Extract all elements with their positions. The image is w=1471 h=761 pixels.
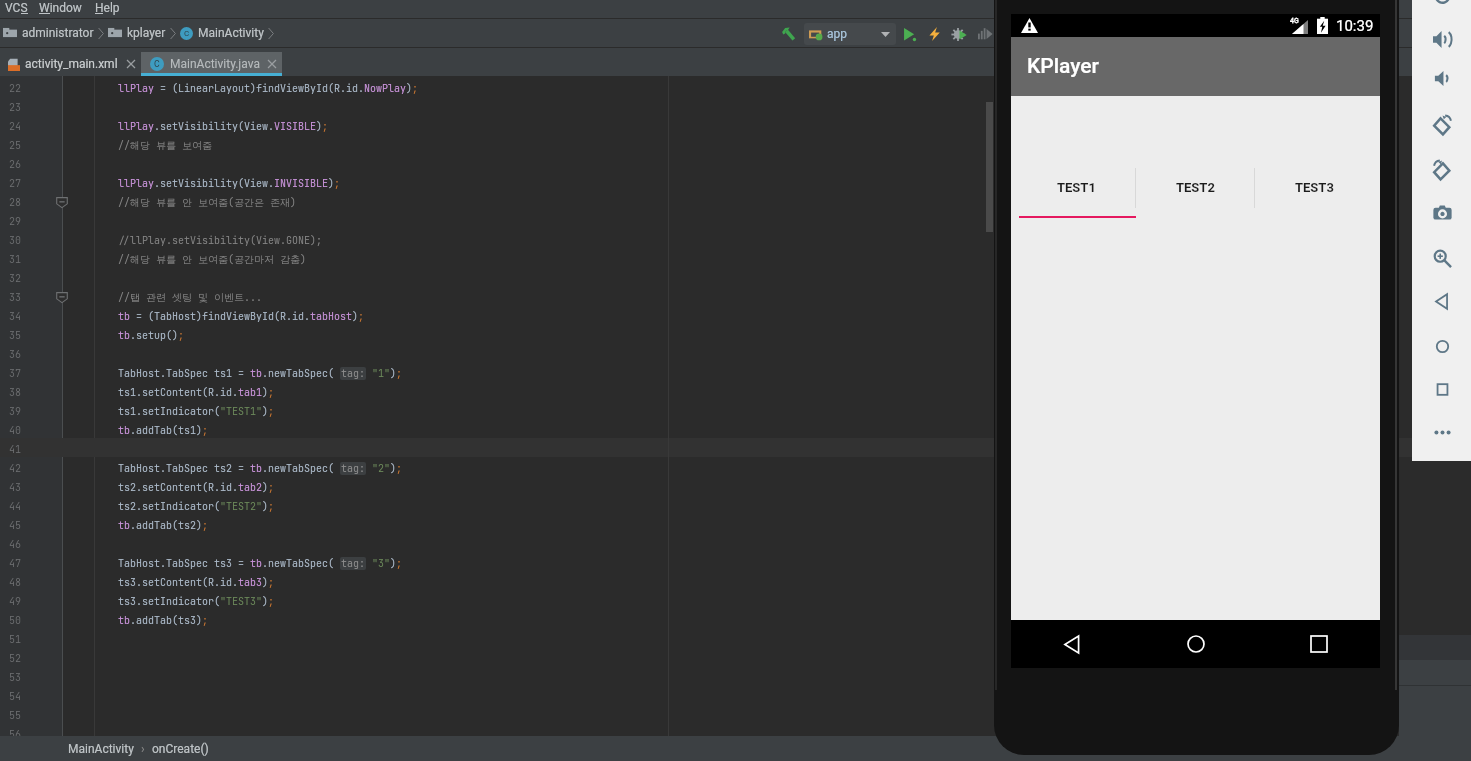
staticText: ; (268, 405, 274, 418)
button[interactable]: Volume down (1420, 56, 1464, 100)
button[interactable]: Build (778, 22, 800, 44)
button[interactable]: Apply changes (924, 24, 944, 44)
staticText: llPlay (118, 120, 154, 133)
staticText: ) (328, 177, 334, 190)
staticText: 44 (9, 500, 21, 513)
staticText: ) (406, 82, 412, 95)
staticText: activity_main.xml (25, 57, 118, 71)
staticText: tb (250, 367, 262, 380)
staticText: //해당 뷰를 보여줌 (118, 139, 212, 152)
staticText: ; (178, 329, 184, 342)
staticText: "2" (372, 462, 390, 475)
button[interactable]: Run (899, 24, 919, 44)
staticText: TabHost.TabSpec ts2 = (118, 462, 250, 475)
staticText: 51 (9, 633, 21, 646)
button[interactable]: Back (1011, 620, 1134, 668)
staticText: 47 (9, 557, 21, 570)
staticText: KPlayer (1027, 54, 1100, 79)
staticText: VCS (5, 1, 28, 15)
staticText: MainActivity.java (170, 57, 260, 71)
staticText: ) (390, 557, 396, 570)
staticText: ; (396, 367, 402, 380)
button[interactable]: Volume up (1420, 17, 1464, 61)
button[interactable]: Help (92, 0, 123, 18)
staticText: TEST3 (1295, 180, 1334, 195)
button[interactable]: VCS (2, 0, 30, 18)
staticText: ts1.setIndicator( (118, 405, 220, 418)
staticText: ; (202, 424, 208, 437)
button[interactable]: administrator (3, 26, 94, 40)
staticText: ) (316, 120, 322, 133)
staticText: 29 (9, 215, 21, 228)
staticText: tb (250, 462, 262, 475)
staticText: = (TabHost)findViewById(R.id. (130, 310, 310, 323)
staticText: tb (118, 310, 130, 323)
button[interactable]: Zoom (1420, 236, 1464, 280)
staticText: 10:39 (1336, 17, 1374, 35)
button[interactable]: app (804, 23, 896, 45)
button[interactable]: Power (1420, 0, 1464, 17)
button[interactable]: Rotate left (1420, 102, 1464, 146)
button[interactable]: Take screenshot (1420, 191, 1464, 235)
staticText: "3" (372, 557, 390, 570)
staticText: 34 (9, 310, 21, 323)
button[interactable]: C (141, 52, 282, 76)
staticText: 26 (9, 158, 21, 171)
button[interactable]: Recents (1257, 620, 1380, 668)
staticText: ; (322, 120, 328, 133)
button[interactable]: More options (1420, 410, 1464, 454)
staticText: app (827, 27, 848, 41)
staticText: Window (39, 1, 82, 15)
staticText: VISIBLE (274, 120, 316, 133)
button[interactable]: Profile (975, 24, 995, 44)
staticText: › (141, 742, 145, 756)
staticText: .newTabSpec( (262, 367, 340, 380)
staticText: .newTabSpec( (262, 462, 340, 475)
staticText: 36 (9, 348, 21, 361)
button[interactable]: Home (1134, 620, 1257, 668)
staticText: 4G (1290, 17, 1299, 25)
button[interactable]: onCreate() (152, 742, 209, 756)
button[interactable]: MainActivity (68, 742, 134, 756)
button[interactable]: Overview (1420, 367, 1464, 411)
button[interactable]: Window (36, 0, 87, 18)
button[interactable]: C (180, 26, 264, 40)
staticText: .setVisibility(View. (154, 177, 274, 190)
staticText: ; (268, 576, 274, 589)
button[interactable]: activity_main.xml (0, 52, 141, 76)
staticText: 39 (9, 405, 21, 418)
staticText: 37 (9, 367, 21, 380)
staticText: 52 (9, 652, 21, 665)
staticText: //해당 뷰를 안 보여줌(공간마저 감춤) (118, 253, 306, 266)
button[interactable]: Close tab (266, 58, 278, 70)
staticText: ; (396, 557, 402, 570)
staticText: ) (262, 576, 268, 589)
button[interactable]: Home (1420, 324, 1464, 368)
button[interactable]: TEST1 (1017, 168, 1135, 208)
staticText: 50 (9, 614, 21, 627)
button[interactable]: kplayer (108, 26, 166, 40)
staticText: .addTab(ts1) (130, 424, 202, 437)
staticText: "1" (372, 367, 390, 380)
button[interactable]: Rotate right (1420, 147, 1464, 191)
staticText: MainActivity (68, 742, 134, 756)
staticText: 32 (9, 272, 21, 285)
staticText: 41 (9, 443, 21, 456)
button[interactable]: TEST2 (1136, 168, 1254, 208)
staticText: ) (262, 405, 268, 418)
staticText: TabHost.TabSpec ts1 = (118, 367, 250, 380)
staticText: 27 (9, 177, 21, 190)
button[interactable]: Debug (949, 24, 969, 44)
button[interactable]: TEST3 (1255, 168, 1373, 208)
staticText: ; (412, 82, 418, 95)
button[interactable]: Back (1420, 279, 1464, 323)
staticText: 38 (9, 386, 21, 399)
staticText: 22 (9, 82, 21, 95)
staticText: ts1.setContent(R.id. (118, 386, 238, 399)
staticText: onCreate() (152, 742, 209, 756)
staticText: ; (396, 462, 402, 475)
button[interactable]: Close tab (125, 58, 137, 70)
